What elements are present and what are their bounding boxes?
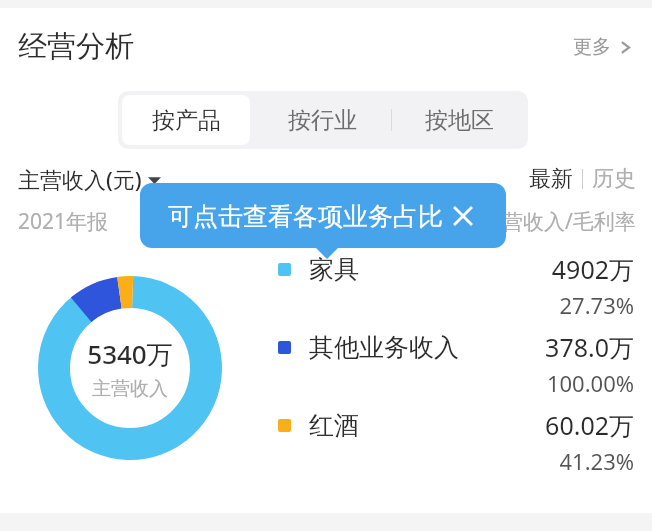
button[interactable]: 最新 bbox=[529, 165, 573, 193]
staticText: 营收入/毛利率 bbox=[502, 207, 636, 236]
staticText: 主营收入(元) bbox=[18, 164, 142, 194]
button[interactable]: 主营收入(元) bbox=[18, 164, 161, 194]
staticText: 红酒 bbox=[309, 410, 359, 441]
staticText: 60.02万 bbox=[545, 408, 634, 442]
button[interactable]: 可点击查看各项业务占比 bbox=[140, 183, 506, 248]
staticText: 按地区 bbox=[425, 106, 494, 135]
button[interactable]: 按地区 bbox=[391, 91, 528, 149]
button[interactable]: 家具 bbox=[278, 252, 634, 320]
staticText: 经营分析 bbox=[18, 28, 134, 65]
staticText: 家具 bbox=[309, 254, 359, 285]
button[interactable]: 红酒 bbox=[278, 408, 634, 476]
staticText: 100.00% bbox=[546, 368, 634, 398]
button[interactable]: 按行业 bbox=[254, 91, 391, 149]
staticText: 378.0万 bbox=[545, 330, 634, 364]
button[interactable]: 历史 bbox=[592, 165, 636, 193]
staticText: 2021年报 bbox=[18, 207, 109, 236]
staticText: 可点击查看各项业务占比 bbox=[168, 201, 443, 232]
button[interactable]: 关闭 bbox=[446, 199, 480, 233]
staticText: 按产品 bbox=[152, 106, 221, 135]
staticText: 最新 bbox=[529, 165, 573, 193]
staticText: 主营收入 bbox=[92, 377, 168, 401]
staticText: 历史 bbox=[592, 165, 636, 193]
button[interactable]: 更多 bbox=[569, 29, 636, 65]
button[interactable]: 主营收入饼图 bbox=[38, 276, 222, 460]
staticText: 4902万 bbox=[551, 252, 634, 286]
staticText: 41.23% bbox=[559, 446, 634, 476]
button[interactable]: 其他业务收入 bbox=[278, 330, 634, 398]
staticText: 27.73% bbox=[559, 290, 634, 320]
button[interactable]: 按产品 bbox=[122, 95, 250, 145]
staticText: 按行业 bbox=[288, 106, 357, 135]
staticText: 更多 bbox=[573, 35, 611, 59]
staticText: 5340万 bbox=[87, 336, 173, 372]
staticText: 其他业务收入 bbox=[309, 332, 459, 363]
